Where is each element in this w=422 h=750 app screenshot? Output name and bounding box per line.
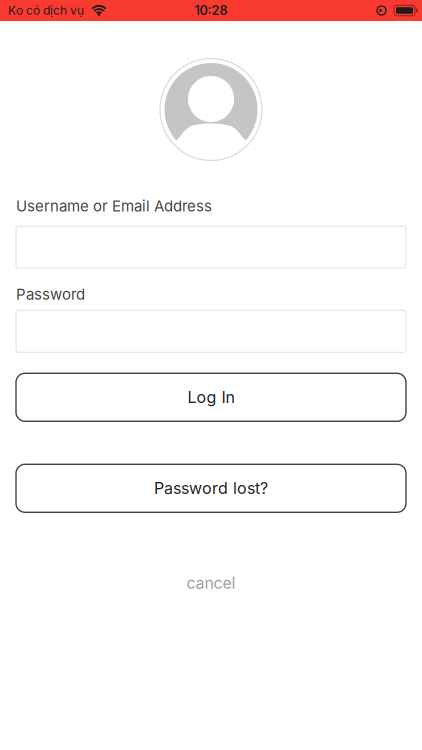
button[interactable]: cancel: [174, 567, 247, 599]
staticText: Password: [16, 285, 85, 303]
button[interactable]: Log In: [16, 373, 406, 421]
staticText: 10:28: [194, 3, 227, 18]
button[interactable]: Password lost?: [16, 464, 406, 512]
staticText: Password lost?: [154, 479, 268, 498]
staticText: Username or Email Address: [16, 197, 212, 215]
staticText: Ko có dịch vụ: [8, 3, 84, 18]
staticText: Log In: [187, 388, 234, 407]
staticText: cancel: [186, 573, 235, 593]
